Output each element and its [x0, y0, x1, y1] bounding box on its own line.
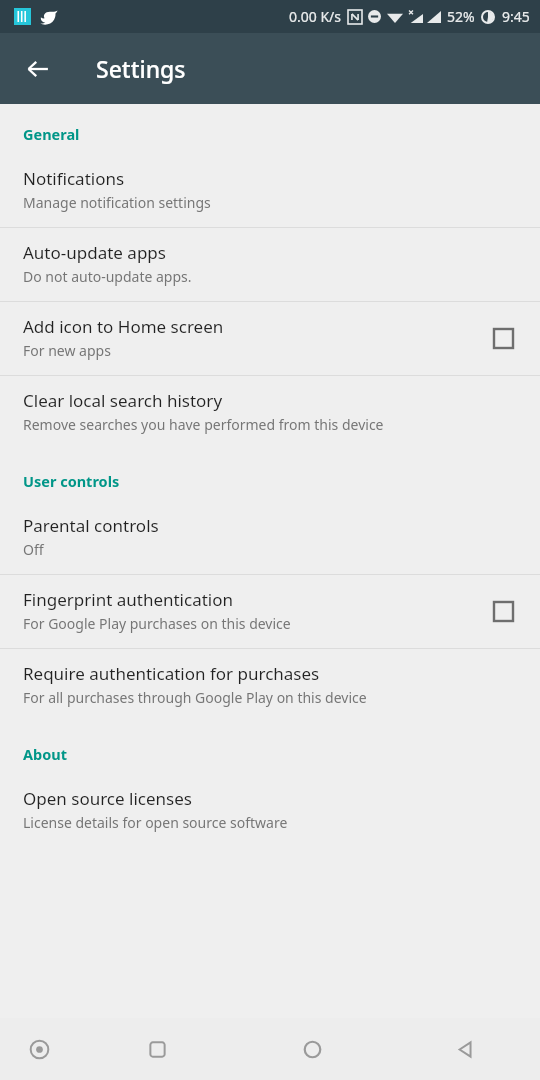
staticText: For Google Play purchases on this device — [23, 614, 291, 633]
staticText: Open source licenses — [23, 787, 192, 810]
staticText: User controls — [23, 471, 120, 491]
staticText: General — [23, 124, 80, 144]
staticText: 9:45 — [502, 7, 530, 26]
button[interactable]: Add icon to Home screen — [0, 302, 540, 375]
button[interactable]: Back — [10, 41, 66, 97]
button[interactable]: Toggle Fingerprint authentication — [486, 594, 520, 628]
button[interactable]: Open source licenses — [0, 774, 540, 847]
button[interactable]: Parental controls — [0, 501, 540, 574]
staticText: For new apps — [23, 341, 111, 360]
staticText: 52% — [447, 7, 475, 26]
button[interactable]: Home — [235, 1018, 390, 1080]
button[interactable]: Back — [390, 1018, 540, 1080]
button[interactable]: Toggle Add icon to Home screen — [486, 321, 520, 355]
staticText: For all purchases through Google Play on… — [23, 688, 367, 707]
button[interactable]: Require authentication for purchases — [0, 649, 540, 722]
staticText: Fingerprint authentication — [23, 588, 234, 611]
button[interactable]: Notifications — [0, 154, 540, 227]
staticText: Clear local search history — [23, 389, 223, 412]
staticText: Settings — [96, 53, 186, 84]
staticText: Remove searches you have performed from … — [23, 415, 384, 434]
staticText: Manage notification settings — [23, 193, 211, 212]
button[interactable]: Auto-update apps — [0, 228, 540, 301]
staticText: 0.00 K/s — [289, 7, 341, 26]
staticText: Parental controls — [23, 514, 159, 537]
staticText: License details for open source software — [23, 813, 288, 832]
staticText: Add icon to Home screen — [23, 315, 224, 338]
staticText: Require authentication for purchases — [23, 662, 320, 685]
staticText: Do not auto-update apps. — [23, 267, 192, 286]
staticText: About — [23, 744, 67, 764]
staticText: Notifications — [23, 167, 125, 190]
button[interactable]: Clear local search history — [0, 376, 540, 449]
button[interactable]: Fingerprint authentication — [0, 575, 540, 648]
staticText: Auto-update apps — [23, 241, 166, 264]
button[interactable]: Recents — [79, 1018, 235, 1080]
button[interactable]: Assistant — [0, 1018, 79, 1080]
staticText: Off — [23, 540, 44, 559]
